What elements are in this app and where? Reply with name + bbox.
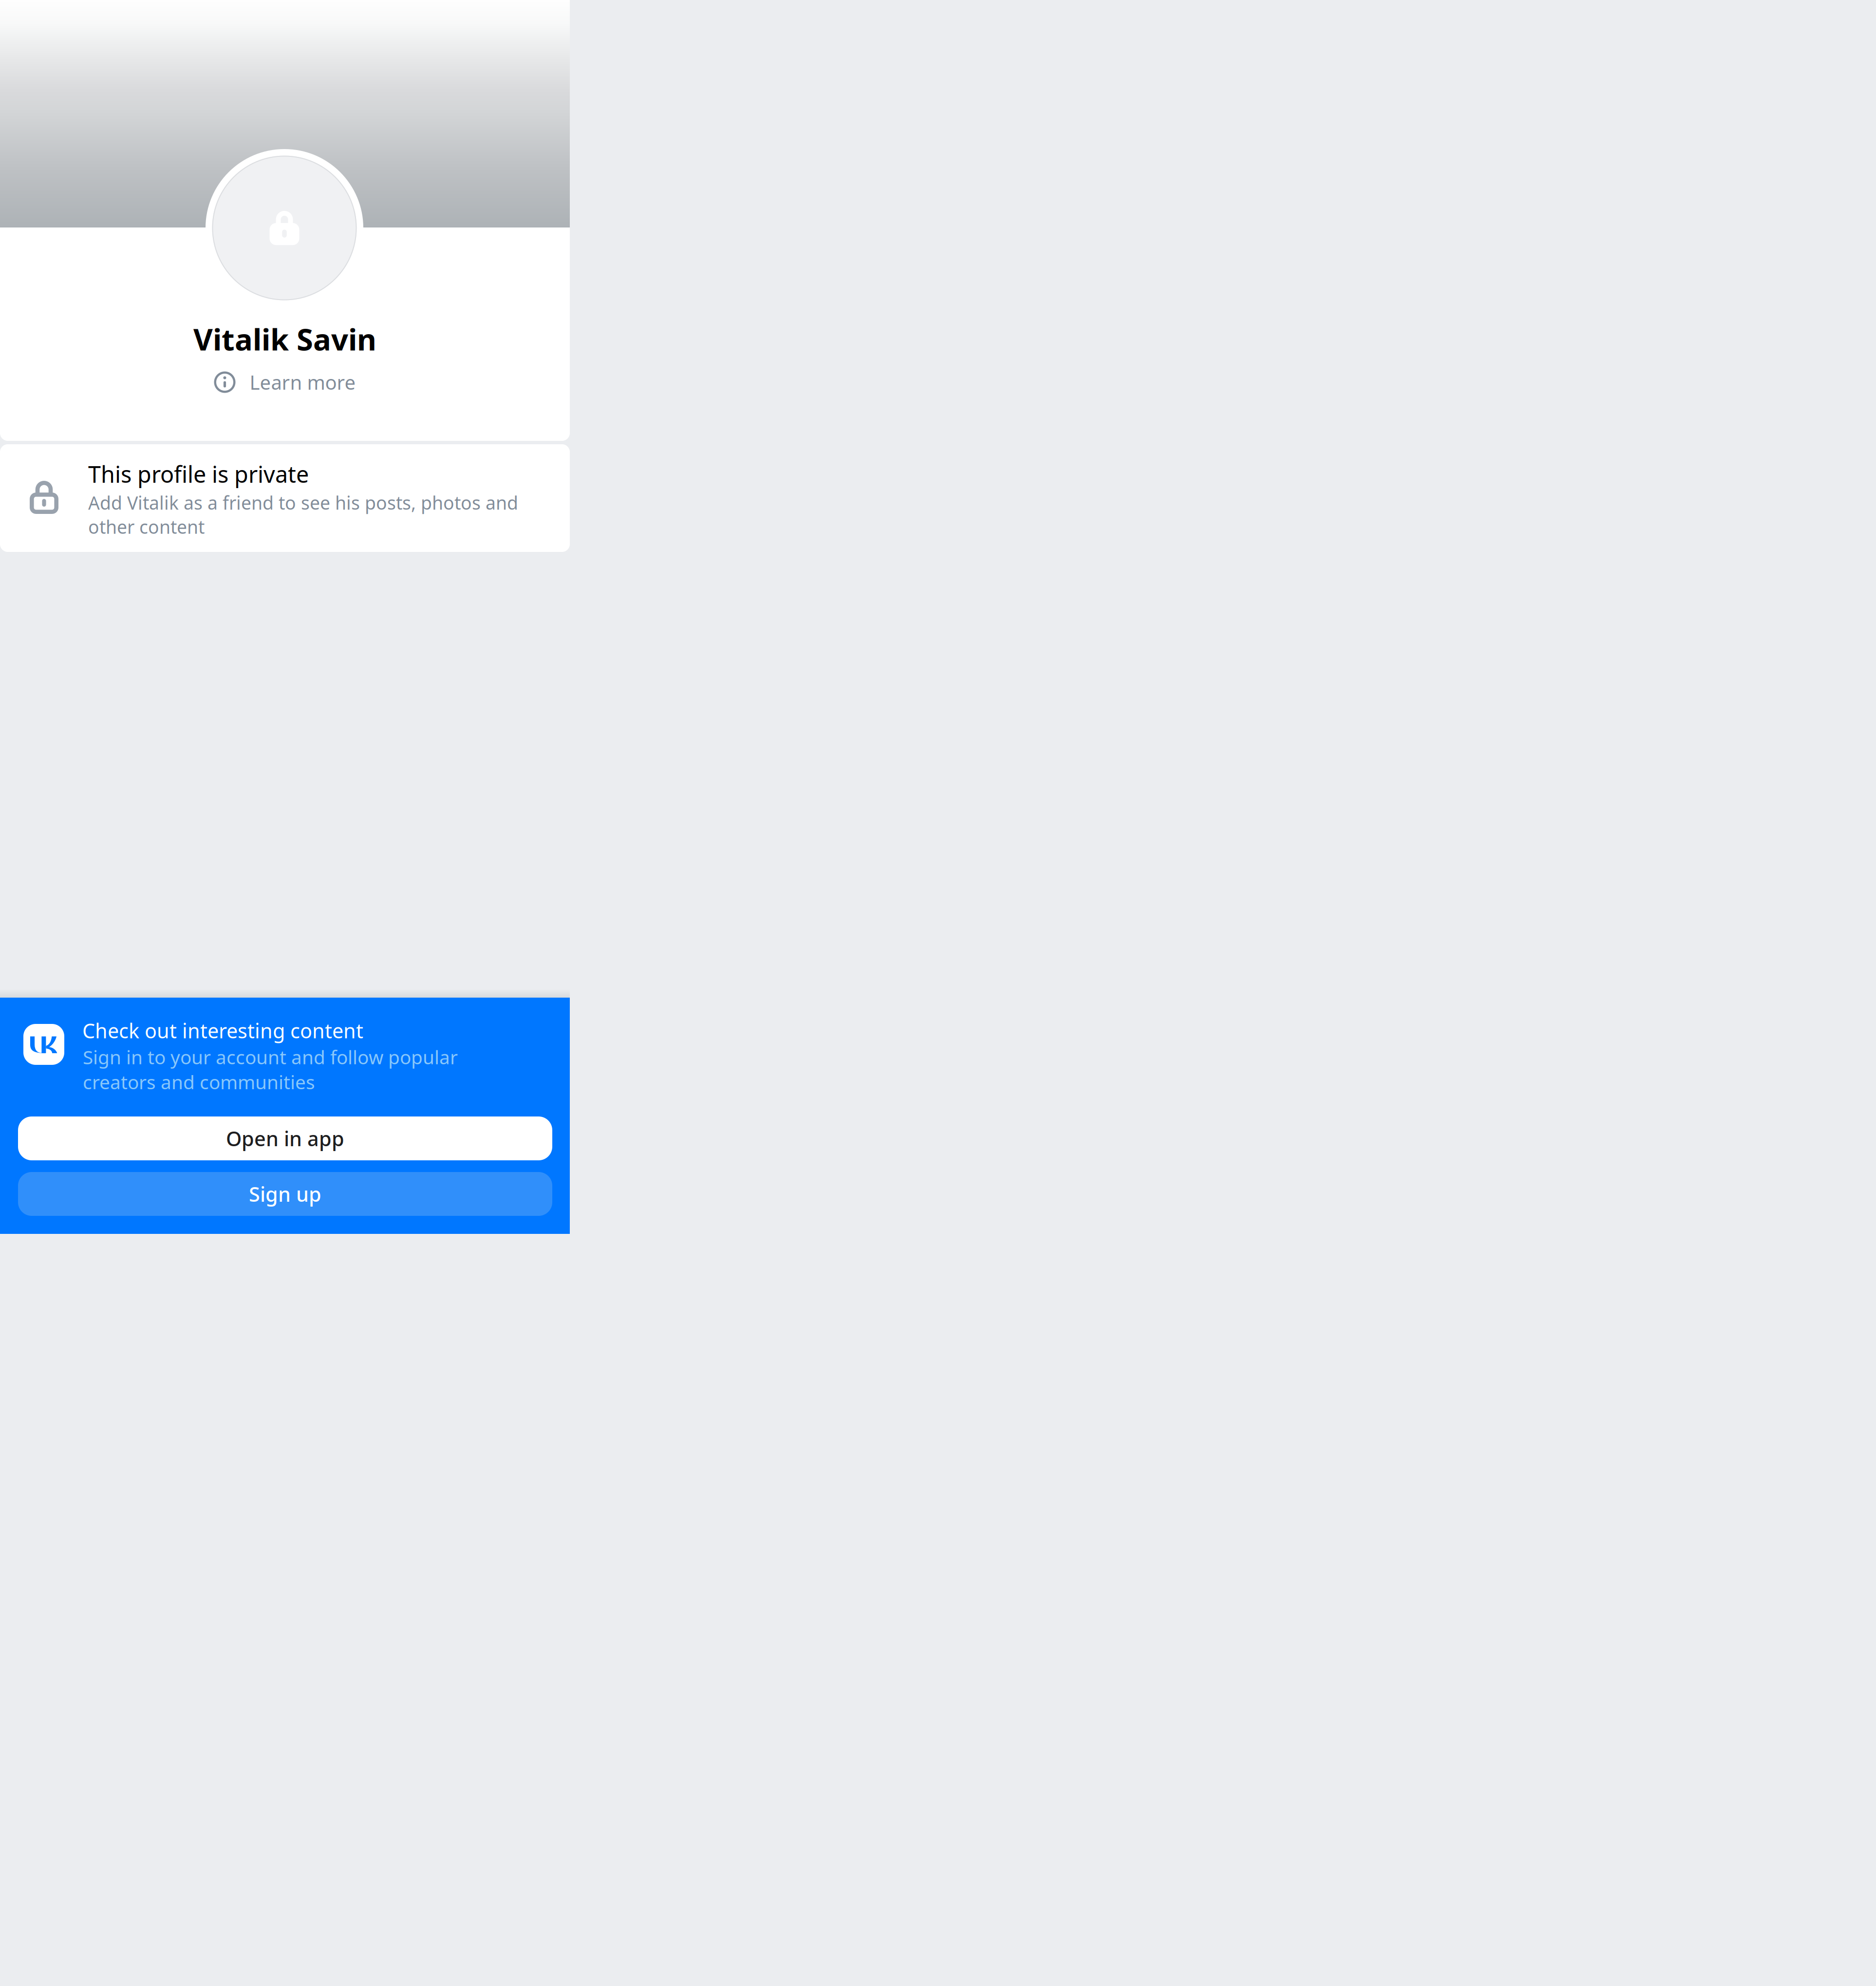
- button[interactable]: Profile photo: [206, 149, 363, 307]
- staticText: Sign in to your account and follow popul…: [83, 1044, 458, 1094]
- staticText: Vitalik Savin: [193, 319, 376, 359]
- button[interactable]: Sign up: [18, 1172, 552, 1216]
- button[interactable]: Open in app: [18, 1116, 552, 1160]
- staticText: Add Vitalik as a friend to see his posts…: [88, 491, 518, 539]
- button[interactable]: VK: [23, 1024, 64, 1065]
- staticText: This profile is private: [88, 459, 309, 489]
- staticText: Learn more: [250, 369, 356, 395]
- staticText: Open in app: [226, 1125, 344, 1152]
- button[interactable]: Learn more: [0, 369, 570, 395]
- staticText: Sign up: [249, 1181, 321, 1207]
- staticText: Check out interesting content: [82, 1017, 363, 1044]
